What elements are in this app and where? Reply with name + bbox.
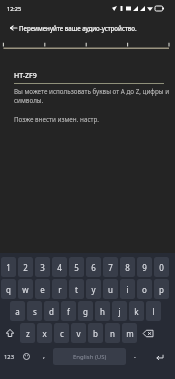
staticText: h [100,306,105,317]
staticText: 5 [74,262,79,273]
button[interactable]: y [86,279,101,299]
button[interactable]: 1 [1,257,16,277]
staticText: u [108,284,113,295]
button[interactable]: x [37,323,52,343]
button[interactable]: u [103,279,118,299]
button[interactable]: . [126,348,144,365]
staticText: i [126,284,129,295]
button[interactable]: g [78,301,93,321]
button[interactable]: Back [3,18,23,38]
button[interactable]: r [52,279,67,299]
staticText: . [134,351,136,361]
button[interactable]: Backspace [138,323,157,343]
staticText: g [83,306,88,317]
staticText: j [118,306,121,317]
button[interactable]: Позже внести измен. настр. [14,115,99,124]
staticText: Позже внести измен. настр. [14,115,99,124]
staticText: 123 [4,353,14,361]
button[interactable]: p [154,279,169,299]
staticText: s [33,306,37,317]
staticText: 8 [125,262,130,273]
staticText: 3 [40,262,45,273]
button[interactable]: 2 [18,257,33,277]
button[interactable]: 5 [69,257,84,277]
button[interactable]: t [69,279,84,299]
button[interactable]: d [44,301,59,321]
button[interactable]: 123 [0,348,18,365]
button[interactable]: 4 [52,257,67,277]
staticText: b [93,328,98,339]
staticText: c [60,328,64,339]
staticText: f [67,306,70,317]
button[interactable]: s [27,301,42,321]
staticText: 7 [108,262,113,273]
button[interactable]: English (US) [53,348,126,365]
staticText: n [110,328,115,339]
staticText: r [58,284,62,295]
staticText: p [159,284,164,295]
button[interactable]: Shift [0,323,19,343]
button[interactable]: w [18,279,33,299]
staticText: z [26,328,30,339]
button[interactable]: q [1,279,16,299]
button[interactable]: z [20,323,35,343]
staticText: e [40,284,45,295]
staticText: o [142,284,147,295]
button[interactable]: c [54,323,69,343]
button[interactable]: , [35,348,53,365]
button[interactable]: 6 [86,257,101,277]
staticText: 9 [142,262,147,273]
staticText: 1 [6,262,11,273]
button[interactable]: Enter [144,348,175,365]
staticText: q [6,284,11,295]
button[interactable]: v [71,323,86,343]
button[interactable]: l [146,301,161,321]
button[interactable]: a [10,301,25,321]
button[interactable]: j [112,301,127,321]
button[interactable]: 0 [154,257,169,277]
staticText: m [126,328,134,339]
staticText: English (US) [73,353,107,361]
staticText: 0 [159,262,164,273]
button[interactable]: i [120,279,135,299]
staticText: v [76,328,81,339]
staticText: y [91,284,96,295]
button[interactable]: m [122,323,137,343]
button[interactable]: 8 [120,257,135,277]
staticText: x [42,328,47,339]
other: Shift [6,329,14,337]
button[interactable]: 3 [35,257,50,277]
staticText: d [49,306,54,317]
staticText: 6 [91,262,96,273]
staticText: HT-ZF9 [14,71,37,81]
staticText: 4 [57,262,62,273]
staticText: 2 [23,262,28,273]
button[interactable]: f [61,301,76,321]
button[interactable]: 7 [103,257,118,277]
staticText: , [43,351,45,361]
button[interactable]: k [129,301,144,321]
staticText: k [134,306,139,317]
button[interactable]: Emoji [18,348,35,365]
button[interactable]: 9 [137,257,152,277]
button[interactable]: o [137,279,152,299]
other: Backspace [143,330,153,337]
button[interactable]: b [88,323,103,343]
button[interactable]: h [95,301,110,321]
staticText: l [152,306,155,317]
staticText: 12:25 [7,5,22,12]
staticText: t [75,284,78,295]
staticText: Вы можете использовать буквы от A до Z, … [14,87,174,105]
staticText: a [15,306,20,317]
button[interactable]: e [35,279,50,299]
button[interactable]: n [105,323,120,343]
staticText: Переименуйте ваше аудио-устройство. [19,24,137,32]
staticText: w [22,284,29,295]
